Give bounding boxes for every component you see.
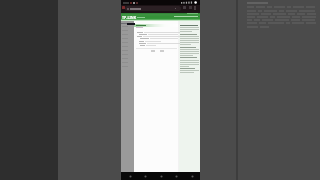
button[interactable]: Menu	[185, 172, 199, 180]
staticText: TP-LINK	[122, 15, 137, 20]
button[interactable]: Home	[154, 172, 168, 180]
button[interactable]: Site info	[122, 6, 125, 9]
button[interactable]: Address bar	[125, 6, 181, 11]
button[interactable]: Forward	[138, 172, 152, 180]
button[interactable]: Back	[123, 172, 137, 180]
button[interactable]: Tabs	[169, 172, 183, 180]
